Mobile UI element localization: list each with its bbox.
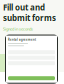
staticText: Fill out and submit forms xyxy=(3,2,56,23)
staticText: Rental agreement xyxy=(8,38,36,42)
staticText: Signed in seconds xyxy=(3,26,33,31)
